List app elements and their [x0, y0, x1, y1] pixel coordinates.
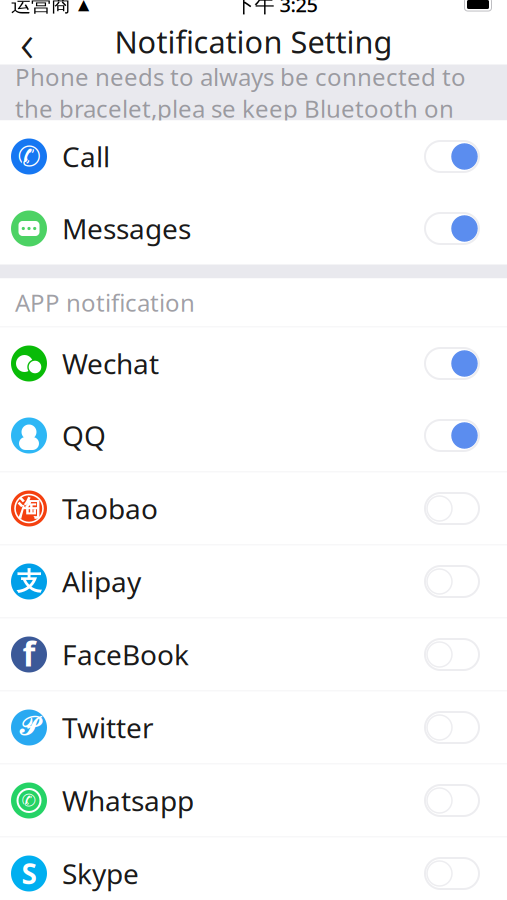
staticText: FaceBook	[62, 636, 189, 673]
staticText: ✆	[17, 141, 40, 172]
staticText: Twitter	[62, 709, 154, 746]
button[interactable]: 淘	[0, 472, 507, 545]
button[interactable]: QQ	[0, 399, 507, 472]
staticText: Whatsapp	[62, 782, 194, 819]
staticText: ‹	[20, 6, 34, 77]
button[interactable]: Back	[0, 19, 54, 63]
staticText: Notification Setting	[114, 21, 392, 62]
staticText: Phone needs to always be connected to th…	[15, 61, 466, 124]
button[interactable]: 𝒫	[0, 691, 507, 764]
staticText: Wechat	[62, 345, 159, 382]
staticText: QQ	[62, 417, 106, 454]
staticText: Call	[62, 138, 110, 175]
staticText: ✆	[21, 791, 36, 810]
button[interactable]: ✆	[0, 764, 507, 837]
button[interactable]: 支	[0, 545, 507, 618]
button[interactable]: Wechat	[0, 327, 507, 399]
staticText: Alipay	[62, 563, 141, 600]
staticText: 运营商	[11, 0, 71, 17]
staticText: Taobao	[62, 490, 158, 527]
button[interactable]: Messages	[0, 192, 507, 264]
staticText: APP notification	[15, 287, 195, 318]
staticText: 支	[16, 566, 41, 597]
staticText: 𝒫	[19, 714, 38, 740]
staticText: f	[22, 631, 35, 676]
staticText: S	[21, 855, 36, 892]
button[interactable]: ✆	[0, 120, 507, 192]
staticText: 下午 3:25	[234, 0, 317, 18]
staticText: Messages	[62, 210, 191, 247]
staticText: 淘	[17, 495, 40, 522]
staticText: ▲	[78, 0, 89, 13]
staticText: Skype	[62, 855, 139, 892]
button[interactable]: S	[0, 837, 507, 900]
button[interactable]: f	[0, 618, 507, 691]
